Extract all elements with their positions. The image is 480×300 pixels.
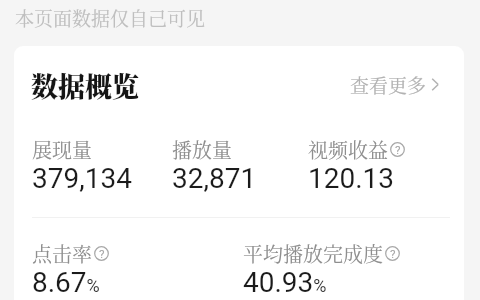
staticText: 展现量 <box>32 135 92 164</box>
other: Help <box>94 246 109 261</box>
staticText: 平均播放完成度 <box>243 239 383 268</box>
other: Help <box>385 246 400 261</box>
staticText: 8.67% <box>32 266 100 299</box>
staticText: ? <box>99 247 105 261</box>
staticText: 40.93% <box>243 266 327 299</box>
staticText: 379,134 <box>32 162 132 195</box>
staticText: 播放量 <box>172 135 232 164</box>
staticText: ? <box>390 247 396 261</box>
staticText: ? <box>395 143 401 157</box>
staticText: 查看更多 <box>350 71 427 98</box>
button[interactable]: 查看更多 <box>346 68 443 101</box>
staticText: 数据概览 <box>31 66 139 105</box>
other: Help <box>390 142 405 157</box>
staticText: 32,871 <box>172 162 257 195</box>
staticText: 点击率 <box>32 239 92 268</box>
staticText: 本页面数据仅自己可见 <box>15 4 206 31</box>
staticText: 120.13 <box>308 162 395 195</box>
staticText: 视频收益 <box>308 135 388 164</box>
